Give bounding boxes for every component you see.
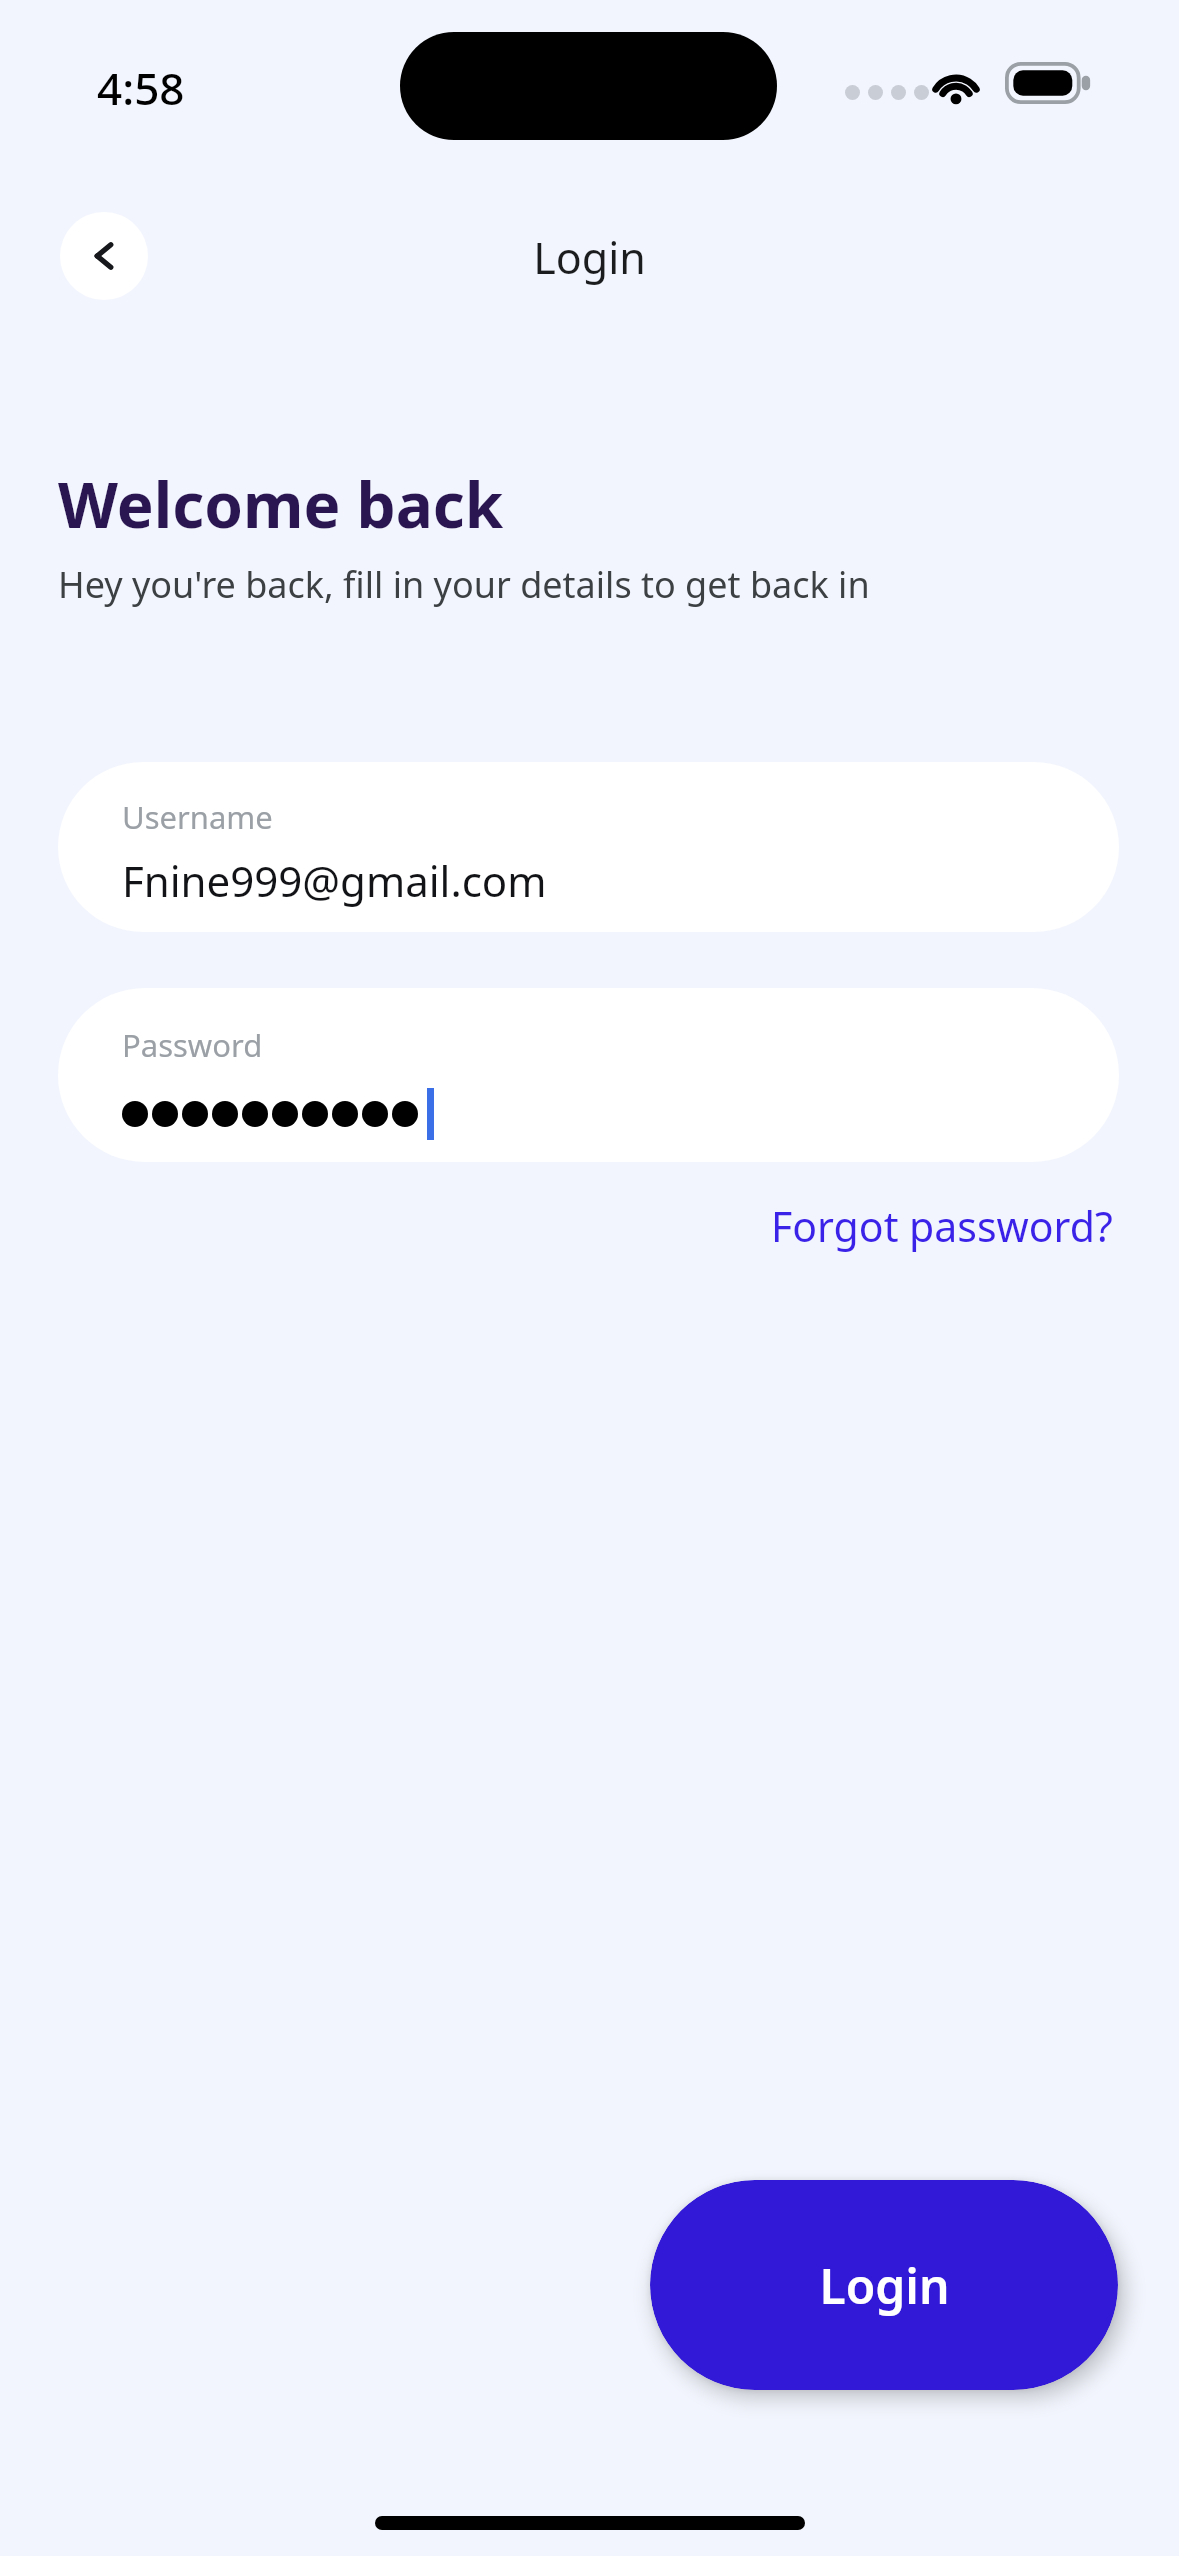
button[interactable]: Login [650,2180,1118,2390]
staticText: Welcome back [58,462,504,546]
button[interactable]: Password [58,988,1119,1162]
staticText: Login [819,2253,950,2318]
staticText: Password [122,1024,263,1066]
staticText: Forgot password? [771,1198,1113,1254]
button[interactable]: Username [58,762,1119,932]
button[interactable]: Forgot password? [767,1190,1117,1262]
staticText: Hey you're back, fill in your details to… [58,560,870,609]
staticText: Login [533,228,646,286]
staticText: Username [122,796,273,838]
staticText: 4:58 [97,58,185,118]
staticText: Fnine999@gmail.com [122,852,547,909]
button[interactable]: Back [60,212,148,300]
